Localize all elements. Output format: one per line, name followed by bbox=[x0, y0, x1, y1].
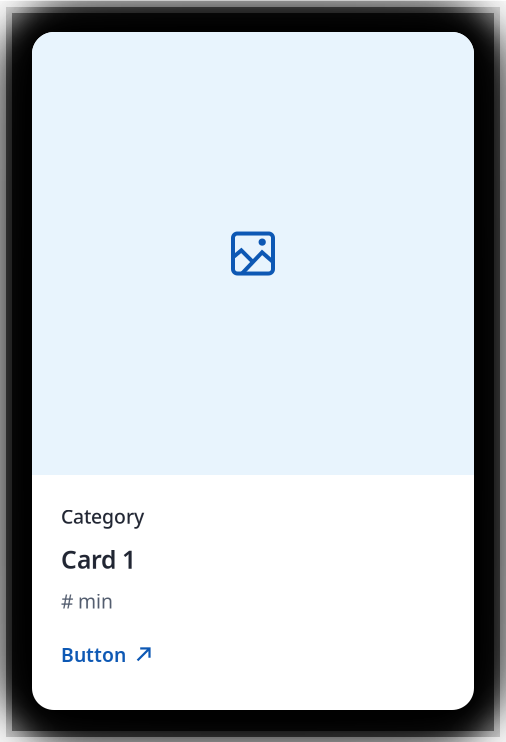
staticText: # min bbox=[61, 588, 113, 614]
staticText: Button bbox=[61, 641, 126, 668]
staticText: Category bbox=[61, 503, 144, 529]
staticText: Card 1 bbox=[61, 542, 136, 576]
button[interactable]: Button bbox=[61, 641, 151, 668]
